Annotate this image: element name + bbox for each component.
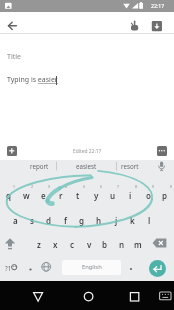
button[interactable] (141, 202, 158, 228)
button[interactable] (122, 174, 139, 200)
button[interactable] (148, 229, 174, 254)
button[interactable] (130, 229, 147, 254)
staticText: k (130, 215, 135, 226)
button[interactable] (31, 229, 48, 254)
staticText: 0 (170, 184, 172, 189)
button[interactable] (70, 174, 87, 200)
button[interactable] (38, 255, 55, 281)
staticText: r (59, 190, 63, 201)
staticText: e (41, 190, 46, 201)
button[interactable] (47, 229, 64, 254)
button[interactable] (57, 160, 116, 172)
button[interactable] (122, 255, 139, 281)
button[interactable] (24, 283, 52, 309)
button[interactable] (154, 285, 174, 305)
staticText: o (146, 190, 151, 201)
button[interactable] (57, 202, 74, 228)
button[interactable] (124, 202, 141, 228)
button[interactable] (139, 174, 156, 200)
staticText: q (6, 190, 12, 201)
button[interactable] (22, 255, 38, 281)
staticText: y (94, 190, 99, 201)
button[interactable] (152, 160, 172, 172)
staticText: Edited 22:17 (73, 148, 102, 155)
button[interactable] (7, 146, 17, 156)
staticText: 4 (65, 184, 67, 189)
staticText: b (102, 239, 108, 250)
staticText: a (13, 215, 18, 226)
staticText: Typing is easier (7, 75, 58, 85)
staticText: 7 (117, 184, 119, 189)
staticText: g (79, 215, 85, 226)
staticText: p (162, 190, 168, 201)
button[interactable] (149, 260, 166, 277)
staticText: t (76, 190, 80, 201)
button[interactable] (23, 202, 40, 228)
button[interactable] (80, 229, 97, 254)
button[interactable] (52, 174, 69, 200)
staticText: m (134, 239, 142, 250)
button[interactable] (0, 174, 17, 200)
staticText: h (96, 215, 102, 226)
staticText: resort (121, 162, 139, 170)
button[interactable] (120, 283, 148, 309)
button[interactable] (107, 202, 124, 228)
button[interactable] (0, 229, 26, 254)
button[interactable] (114, 229, 131, 254)
button[interactable] (62, 260, 121, 275)
button[interactable] (0, 12, 44, 34)
button[interactable] (74, 283, 102, 309)
staticText: report (30, 162, 49, 170)
button[interactable] (0, 255, 22, 281)
button[interactable] (17, 174, 34, 200)
staticText: ?1 (5, 264, 12, 272)
button[interactable] (25, 160, 56, 172)
button[interactable] (146, 14, 170, 34)
button[interactable] (40, 202, 57, 228)
button[interactable]: Title (7, 52, 67, 64)
staticText: 5 (83, 184, 85, 189)
staticText: s (30, 215, 34, 226)
staticText: u (110, 190, 116, 201)
button[interactable] (104, 174, 121, 200)
button[interactable] (87, 174, 104, 200)
button[interactable] (120, 14, 146, 34)
staticText: z (37, 239, 41, 250)
staticText: 8 (135, 184, 137, 189)
staticText: c (70, 239, 75, 250)
staticText: 22:17 (151, 2, 165, 9)
button[interactable] (74, 202, 91, 228)
staticText: d (46, 215, 52, 226)
staticText: l (148, 215, 151, 226)
staticText: English (82, 263, 102, 271)
button[interactable] (97, 229, 114, 254)
staticText: 9 (152, 184, 154, 189)
button[interactable] (117, 160, 147, 172)
staticText: i (129, 190, 132, 201)
staticText: 1 (13, 184, 15, 189)
button[interactable] (7, 202, 24, 228)
button[interactable] (91, 202, 108, 228)
staticText: n (119, 239, 125, 250)
staticText: 2 (31, 184, 33, 189)
staticText: v (87, 239, 92, 250)
staticText: Title (7, 52, 21, 62)
staticText: 3 (48, 184, 50, 189)
staticText: x (53, 239, 58, 250)
button[interactable] (157, 146, 167, 156)
staticText: easiest (76, 162, 97, 170)
button[interactable] (156, 174, 173, 200)
staticText: j (115, 215, 118, 226)
button[interactable]: Typing is easier (7, 75, 87, 87)
button[interactable] (64, 229, 81, 254)
button[interactable] (35, 174, 52, 200)
staticText: w (23, 190, 30, 201)
staticText: f (64, 215, 67, 226)
staticText: 6 (100, 184, 102, 189)
